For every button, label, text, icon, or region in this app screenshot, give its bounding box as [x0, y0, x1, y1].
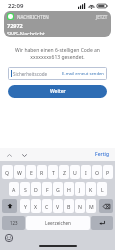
button[interactable]: G [53, 182, 63, 196]
button[interactable]: B [64, 199, 74, 213]
staticText: C [45, 203, 49, 210]
staticText: Fertig [95, 151, 109, 158]
button[interactable]: C [42, 199, 52, 213]
staticText: A [12, 186, 16, 193]
button[interactable]: Umschalten [2, 199, 17, 213]
staticText: Sicherheitscode [13, 71, 48, 77]
staticText: SMS-Nachricht [7, 30, 45, 35]
staticText: B [67, 203, 71, 210]
button[interactable]: T [48, 165, 58, 179]
button[interactable]: S [20, 182, 30, 196]
staticText: Q [5, 169, 10, 176]
button[interactable]: I [81, 165, 91, 179]
staticText: H [67, 186, 71, 193]
staticText: R [40, 169, 44, 176]
button[interactable]: R [37, 165, 47, 179]
button[interactable]: U [70, 165, 80, 179]
button[interactable]: Weiter [8, 85, 107, 98]
staticText: L [101, 186, 104, 193]
button[interactable]: Q [2, 165, 13, 179]
button[interactable]: Sicherheitscode [8, 67, 107, 80]
staticText: U [73, 169, 77, 176]
button[interactable]: Emoji [5, 234, 13, 242]
button[interactable]: V [53, 199, 63, 213]
button[interactable]: Eingabe [91, 216, 113, 230]
button[interactable]: P [103, 165, 113, 179]
staticText: V [56, 203, 60, 210]
button[interactable]: A [9, 182, 19, 196]
button[interactable]: Vorheriges Feld [5, 151, 13, 159]
staticText: K [89, 186, 93, 193]
button[interactable]: N [75, 199, 85, 213]
button[interactable]: Leerzeichen [26, 216, 90, 230]
button[interactable]: K [86, 182, 96, 196]
staticText: I [85, 169, 87, 176]
staticText: M [89, 203, 94, 210]
staticText: Z [63, 169, 66, 176]
button[interactable]: Z [59, 165, 69, 179]
staticText: Y [24, 203, 27, 210]
button[interactable]: E [26, 165, 36, 179]
button[interactable]: Fertig [93, 150, 111, 159]
staticText: G [56, 186, 60, 193]
staticText: 123 [10, 220, 18, 226]
button[interactable]: Nächstes Feld [20, 151, 28, 159]
button[interactable]: NACHRICHTEN [4, 11, 111, 37]
staticText: Leerzeichen [45, 220, 71, 226]
staticText: E [30, 169, 33, 176]
staticText: N [78, 203, 82, 210]
staticText: 72972 [7, 22, 23, 29]
button[interactable]: M [86, 199, 96, 213]
staticText: F [46, 186, 49, 193]
staticText: JETZT [96, 14, 108, 20]
staticText: D [34, 186, 38, 193]
staticText: 22:09 [8, 2, 24, 10]
button[interactable]: F [42, 182, 52, 196]
button[interactable]: E-mail erneut senden [62, 71, 104, 77]
button[interactable]: 123 [2, 216, 25, 230]
staticText: J [79, 186, 81, 193]
staticText: Wir haben einen 6-stelligen Code an xxxx… [15, 47, 100, 61]
staticText: P [106, 169, 110, 176]
button[interactable]: L [97, 182, 107, 196]
staticText: S [24, 186, 27, 193]
staticText: Weiter [50, 88, 66, 95]
staticText: X [34, 203, 38, 210]
button[interactable]: D [31, 182, 41, 196]
staticText: NACHRICHTEN [17, 14, 49, 20]
button[interactable]: Löschen [99, 199, 113, 213]
button[interactable]: H [64, 182, 74, 196]
button[interactable]: Y [20, 199, 30, 213]
button[interactable]: J [75, 182, 85, 196]
button[interactable]: O [92, 165, 102, 179]
button[interactable]: W [14, 165, 25, 179]
staticText: T [52, 169, 55, 176]
staticText: O [95, 169, 100, 176]
staticText: W [17, 169, 22, 176]
button[interactable]: X [31, 199, 41, 213]
